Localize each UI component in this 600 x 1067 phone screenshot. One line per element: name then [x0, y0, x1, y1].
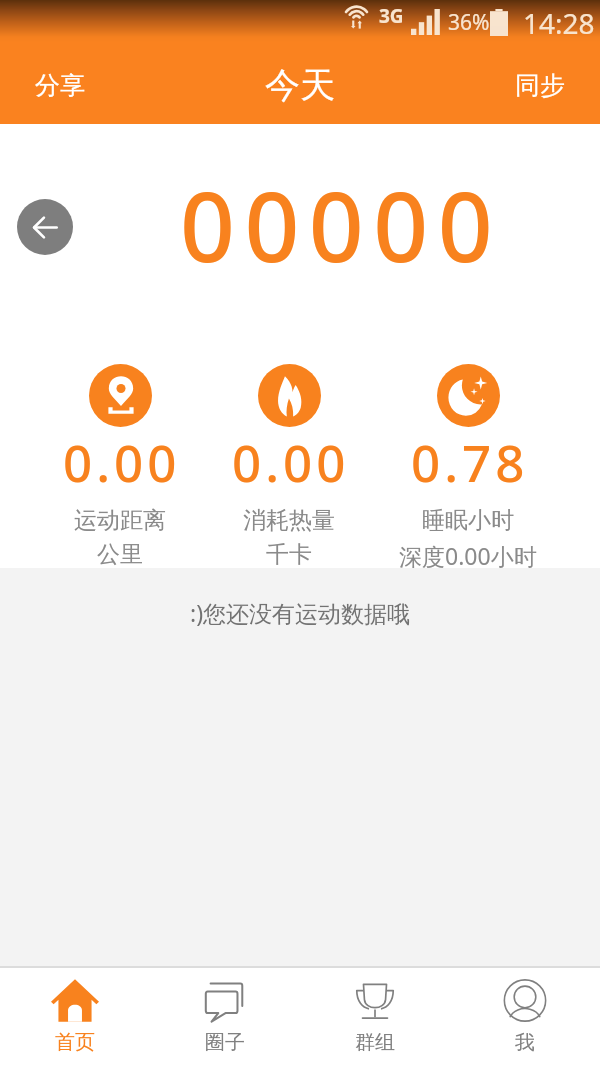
staticText: 运动距离: [74, 506, 166, 535]
staticText: 消耗热量: [243, 506, 335, 535]
staticText: 千卡: [266, 540, 312, 569]
button[interactable]: 我: [450, 968, 600, 1067]
staticText: 36%: [448, 8, 490, 37]
staticText: 首页: [55, 1030, 95, 1055]
button[interactable]: 0.78: [378, 364, 558, 571]
button[interactable]: 同步: [480, 46, 600, 124]
staticText: 我: [515, 1030, 535, 1055]
button[interactable]: 圈子: [150, 968, 300, 1067]
button[interactable]: 首页: [0, 968, 150, 1067]
staticText: 14:28: [523, 4, 595, 42]
staticText: 0.00: [232, 427, 350, 496]
button[interactable]: 0.00: [30, 364, 210, 569]
staticText: 分享: [35, 70, 85, 101]
staticText: 0.00: [63, 427, 181, 496]
staticText: 群组: [355, 1030, 395, 1055]
button[interactable]: 群组: [300, 968, 450, 1067]
staticText: 同步: [515, 70, 565, 101]
staticText: 公里: [97, 540, 143, 569]
button[interactable]: 分享: [0, 46, 120, 124]
staticText: 0.78: [411, 427, 529, 496]
staticText: 3G: [379, 3, 404, 29]
staticText: 00000: [180, 159, 503, 290]
staticText: 深度0.00小时: [399, 540, 537, 571]
button[interactable]: Back: [17, 199, 73, 255]
staticText: 今天: [265, 63, 335, 107]
staticText: :)您还没有运动数据哦: [190, 597, 411, 628]
button[interactable]: 0.00: [199, 364, 379, 569]
staticText: 睡眠小时: [422, 506, 514, 535]
staticText: 圈子: [205, 1030, 245, 1055]
